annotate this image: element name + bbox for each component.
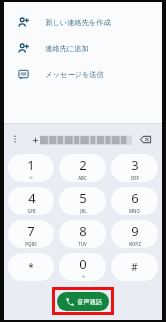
button[interactable]: More options bbox=[4, 128, 26, 150]
staticText: 新しい連絡先を作成 bbox=[45, 18, 111, 27]
button[interactable]: 1 bbox=[8, 154, 54, 182]
button[interactable]: 6 bbox=[111, 187, 158, 215]
staticText: ABC bbox=[78, 175, 87, 181]
staticText: WXYZ bbox=[129, 241, 141, 247]
staticText: + bbox=[82, 274, 85, 280]
button[interactable]: * bbox=[8, 253, 54, 281]
staticText: GHI bbox=[27, 208, 36, 214]
staticText: 4 bbox=[28, 189, 36, 207]
button[interactable]: 連絡先に追加 bbox=[4, 35, 162, 61]
button[interactable]: 5 bbox=[59, 187, 106, 215]
button[interactable]: 新しい連絡先を作成 bbox=[4, 9, 162, 35]
staticText: # bbox=[131, 260, 138, 274]
staticText: JKL bbox=[80, 208, 87, 214]
staticText: メッセージを送信 bbox=[45, 70, 104, 79]
button[interactable]: Backspace bbox=[132, 126, 158, 152]
button[interactable]: 0 bbox=[59, 253, 106, 281]
staticText: 0 bbox=[79, 255, 87, 273]
staticText: 9 bbox=[131, 222, 139, 240]
staticText: PQRS bbox=[25, 241, 37, 247]
staticText: 音声通話 bbox=[77, 298, 102, 306]
staticText: 5 bbox=[79, 189, 87, 207]
button[interactable]: 3 bbox=[111, 154, 158, 182]
button[interactable]: 7 bbox=[8, 220, 54, 248]
staticText: 3 bbox=[131, 156, 139, 174]
staticText: MNO bbox=[129, 208, 140, 214]
button[interactable]: # bbox=[111, 253, 158, 281]
button[interactable]: メッセージを送信 bbox=[4, 61, 162, 87]
button[interactable]: + bbox=[32, 129, 132, 149]
staticText: + bbox=[32, 132, 39, 147]
button[interactable]: 9 bbox=[111, 220, 158, 248]
staticText: 2 bbox=[79, 156, 87, 174]
staticText: 1 bbox=[27, 156, 35, 174]
button[interactable]: 2 bbox=[59, 154, 106, 182]
button[interactable]: 8 bbox=[59, 220, 106, 248]
staticText: 7 bbox=[27, 222, 35, 240]
staticText: 6 bbox=[131, 189, 139, 207]
staticText: 連絡先に追加 bbox=[45, 44, 89, 53]
staticText: 8 bbox=[79, 222, 87, 240]
staticText: DEF bbox=[131, 175, 139, 181]
staticText: * bbox=[28, 260, 34, 274]
staticText: ∞ bbox=[29, 175, 33, 180]
staticText: TUV bbox=[78, 241, 87, 247]
button[interactable]: 4 bbox=[8, 187, 54, 215]
button[interactable]: 音声通話 bbox=[57, 292, 109, 311]
